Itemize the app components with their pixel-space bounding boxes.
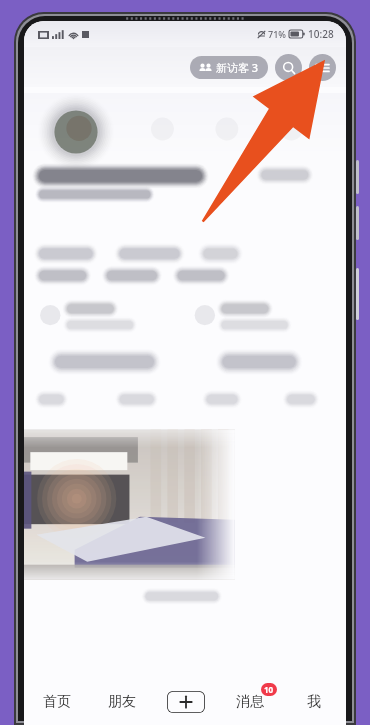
staticText: 71% <box>268 28 286 40</box>
staticText: 新访客 3 <box>216 60 259 75</box>
button[interactable]: Menu <box>309 54 336 81</box>
staticText: 我 <box>307 693 321 711</box>
button[interactable]: Publish <box>154 679 218 725</box>
staticText: 消息 <box>236 693 264 711</box>
staticText: 10 <box>264 684 274 695</box>
staticText: 10:28 <box>308 27 334 41</box>
button[interactable]: 朋友 <box>89 679 154 725</box>
button[interactable]: 首页 <box>24 679 89 725</box>
button[interactable]: 新访客 3 <box>190 56 268 79</box>
staticText: 朋友 <box>108 693 136 711</box>
button[interactable]: Search <box>275 54 302 81</box>
button[interactable]: 消息 <box>218 679 282 725</box>
staticText: 首页 <box>43 693 71 711</box>
button[interactable]: 我 <box>282 679 346 725</box>
